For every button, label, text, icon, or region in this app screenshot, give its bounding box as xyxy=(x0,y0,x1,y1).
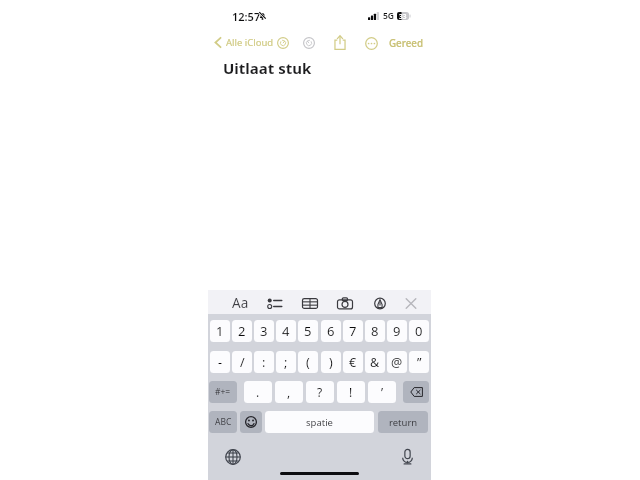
button[interactable]: @ xyxy=(387,351,407,373)
button[interactable]: ? xyxy=(306,381,334,403)
staticText: 8 xyxy=(371,322,379,340)
staticText: & xyxy=(370,354,380,371)
staticText: 7 xyxy=(349,322,357,340)
staticText: 1 xyxy=(216,322,224,340)
button[interactable]: Backspace xyxy=(403,381,429,403)
staticText: 2 xyxy=(238,322,246,340)
button[interactable]: € xyxy=(343,351,363,373)
button[interactable]: Gereed xyxy=(389,37,424,51)
button[interactable]: ( xyxy=(298,351,318,373)
staticText: ( xyxy=(306,354,310,371)
button[interactable]: Redo xyxy=(301,35,316,50)
button[interactable]: Bulleted list xyxy=(264,293,286,313)
button[interactable]: 6 xyxy=(321,320,341,342)
button[interactable]: More options xyxy=(362,34,380,52)
button[interactable]: . xyxy=(244,381,272,403)
staticText: 5 xyxy=(304,322,312,340)
staticText: ’ xyxy=(381,384,384,400)
staticText: ; xyxy=(284,354,288,371)
staticText: return xyxy=(389,416,418,429)
button[interactable]: 7 xyxy=(343,320,363,342)
staticText: ” xyxy=(417,354,422,371)
button[interactable]: return xyxy=(378,411,428,433)
button[interactable]: Dictation xyxy=(397,447,417,467)
staticText: ? xyxy=(317,384,323,400)
button[interactable]: ! xyxy=(337,381,365,403)
button[interactable]: Alle iCloud xyxy=(214,35,274,50)
button[interactable]: Table xyxy=(299,293,321,313)
button[interactable]: Share xyxy=(331,33,349,52)
staticText: @ xyxy=(391,354,403,371)
button[interactable]: Emoji xyxy=(240,411,262,433)
button[interactable]: ’ xyxy=(368,381,396,403)
staticText: 5G xyxy=(383,10,395,22)
staticText: Uitlaat stuk xyxy=(223,58,312,78)
button[interactable]: - xyxy=(210,351,230,373)
button[interactable]: Aa xyxy=(226,293,254,313)
staticText: ABC xyxy=(215,416,232,428)
button[interactable]: #+= xyxy=(209,381,237,403)
button[interactable]: 1 xyxy=(210,320,230,342)
staticText: #+= xyxy=(215,386,231,398)
button[interactable]: 5 xyxy=(298,320,318,342)
button[interactable]: ; xyxy=(276,351,296,373)
staticText: Alle iCloud xyxy=(226,36,274,49)
button[interactable]: , xyxy=(275,381,303,403)
staticText: / xyxy=(240,354,245,371)
staticText: ) xyxy=(329,354,333,371)
staticText: : xyxy=(262,354,266,371)
button[interactable]: & xyxy=(365,351,385,373)
staticText: Gereed xyxy=(389,37,424,50)
staticText: Aa xyxy=(232,294,249,312)
staticText: 0 xyxy=(415,322,423,340)
button[interactable]: Switch keyboard xyxy=(223,447,243,467)
staticText: 12:57 xyxy=(232,9,261,24)
button[interactable]: 2 xyxy=(232,320,252,342)
staticText: - xyxy=(218,354,223,371)
staticText: 4 xyxy=(282,322,290,340)
button[interactable]: Close keyboard xyxy=(400,293,422,313)
button[interactable]: ABC xyxy=(209,411,237,433)
staticText: 3 xyxy=(260,322,268,340)
button[interactable]: / xyxy=(232,351,252,373)
button[interactable]: 4 xyxy=(276,320,296,342)
button[interactable]: ” xyxy=(409,351,429,373)
staticText: 33 xyxy=(399,12,407,20)
staticText: 6 xyxy=(327,322,335,340)
staticText: € xyxy=(349,354,357,371)
button[interactable]: 3 xyxy=(254,320,274,342)
button[interactable]: 0 xyxy=(409,320,429,342)
button[interactable]: 8 xyxy=(365,320,385,342)
button[interactable]: Markup xyxy=(369,293,391,313)
button[interactable]: spatie xyxy=(265,411,374,433)
button[interactable]: 9 xyxy=(387,320,407,342)
button[interactable]: Camera xyxy=(334,293,356,313)
staticText: , xyxy=(287,384,291,400)
button[interactable]: ) xyxy=(321,351,341,373)
staticText: . xyxy=(256,384,260,400)
button[interactable]: : xyxy=(254,351,274,373)
button[interactable]: Undo xyxy=(275,35,290,50)
staticText: ! xyxy=(349,384,353,400)
staticText: spatie xyxy=(306,416,333,429)
staticText: 9 xyxy=(393,322,401,340)
